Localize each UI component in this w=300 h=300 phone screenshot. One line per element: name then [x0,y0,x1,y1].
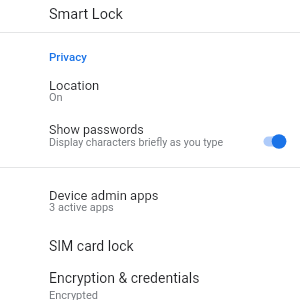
staticText: SIM card lock [49,238,134,254]
staticText: On [49,91,63,104]
staticText: Encrypted [49,289,98,300]
staticText: Smart Lock [49,6,123,23]
staticText: Display characters briefly as you type [49,136,224,148]
staticText: Privacy [49,50,87,63]
staticText: Location [49,78,100,93]
staticText: Show passwords [49,122,144,137]
staticText: Encryption & credentials [49,270,200,286]
staticText: 3 active apps [49,201,114,214]
button[interactable]: Show passwords [0,116,300,158]
staticText: Device admin apps [49,188,159,203]
button[interactable]: SIM card lock [0,228,300,262]
button[interactable]: Encryption & credentials [0,265,300,300]
button[interactable]: Location [0,72,300,106]
button[interactable]: Device admin apps [0,182,300,220]
button[interactable]: Smart Lock [0,0,300,32]
